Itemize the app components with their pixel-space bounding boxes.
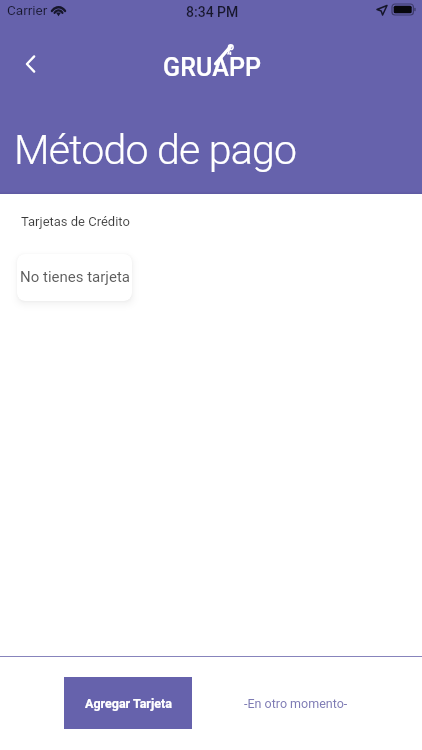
staticText: Carrier [7,2,48,18]
staticText: No tienes tarjeta [20,268,130,286]
button[interactable]: No tienes tarjeta [17,254,132,301]
button[interactable]: Back [15,48,47,80]
staticText: Agregar Tarjeta [85,696,172,711]
staticText: 8:34 PM [186,4,239,20]
staticText: Método de pago [14,126,297,174]
button[interactable]: -En otro momento- [240,677,352,729]
button[interactable]: Agregar Tarjeta [64,677,192,729]
staticText: -En otro momento- [244,696,348,711]
staticText: Tarjetas de Crédito [21,214,130,229]
staticText: GRUAPP [163,53,262,82]
